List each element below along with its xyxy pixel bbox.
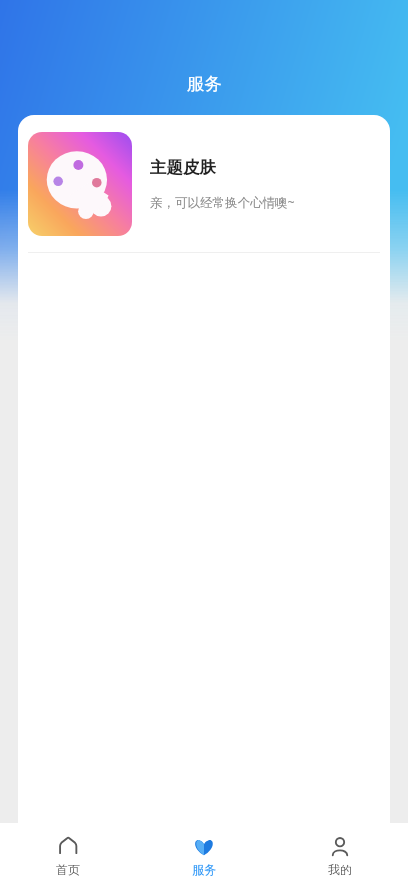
staticText: 首页 [56,862,80,877]
button[interactable]: 首页 [0,823,136,883]
button[interactable]: 我的 [272,823,408,883]
staticText: 主题皮肤 [150,157,216,178]
button[interactable]: 主题皮肤 [18,115,390,252]
staticText: 亲，可以经常换个心情噢~ [150,194,295,211]
button[interactable]: 服务 [136,823,272,883]
staticText: 服务 [187,73,222,95]
staticText: 服务 [192,862,216,877]
staticText: 我的 [328,862,352,877]
